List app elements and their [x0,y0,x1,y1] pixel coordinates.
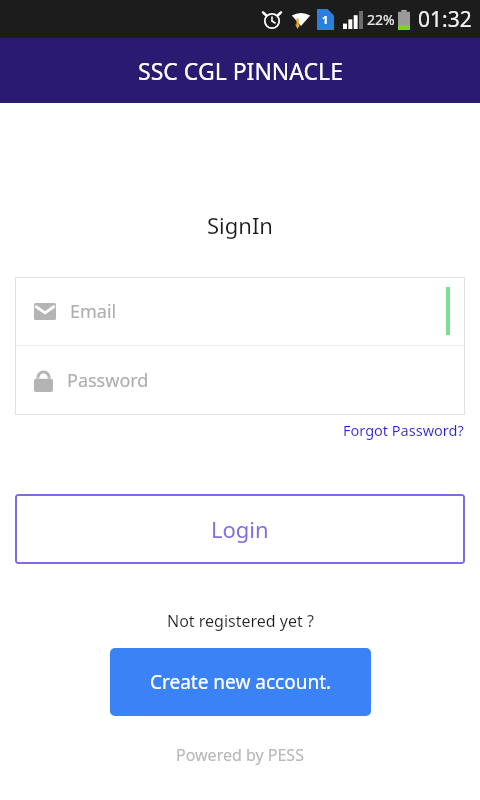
staticText: Email [70,299,117,324]
staticText: 01:32 [418,5,472,34]
staticText: SSC CGL PINNACLE [138,55,343,86]
button[interactable]: Password [15,346,465,415]
button[interactable]: Email [15,277,465,345]
staticText: Password [67,368,149,393]
other: Password [34,369,53,392]
button[interactable]: Forgot Password? [341,418,466,442]
staticText: Login [211,514,269,544]
button[interactable]: Login [15,494,465,564]
other: Email [34,303,56,320]
staticText: Forgot Password? [343,420,464,440]
staticText: SignIn [207,210,273,240]
staticText: Not registered yet ? [167,610,314,632]
staticText: 22% [367,10,395,29]
staticText: Create new account. [150,669,332,695]
staticText: 1 [322,12,329,27]
staticText: Powered by PESS [176,744,304,766]
button[interactable]: Create new account. [110,648,371,716]
